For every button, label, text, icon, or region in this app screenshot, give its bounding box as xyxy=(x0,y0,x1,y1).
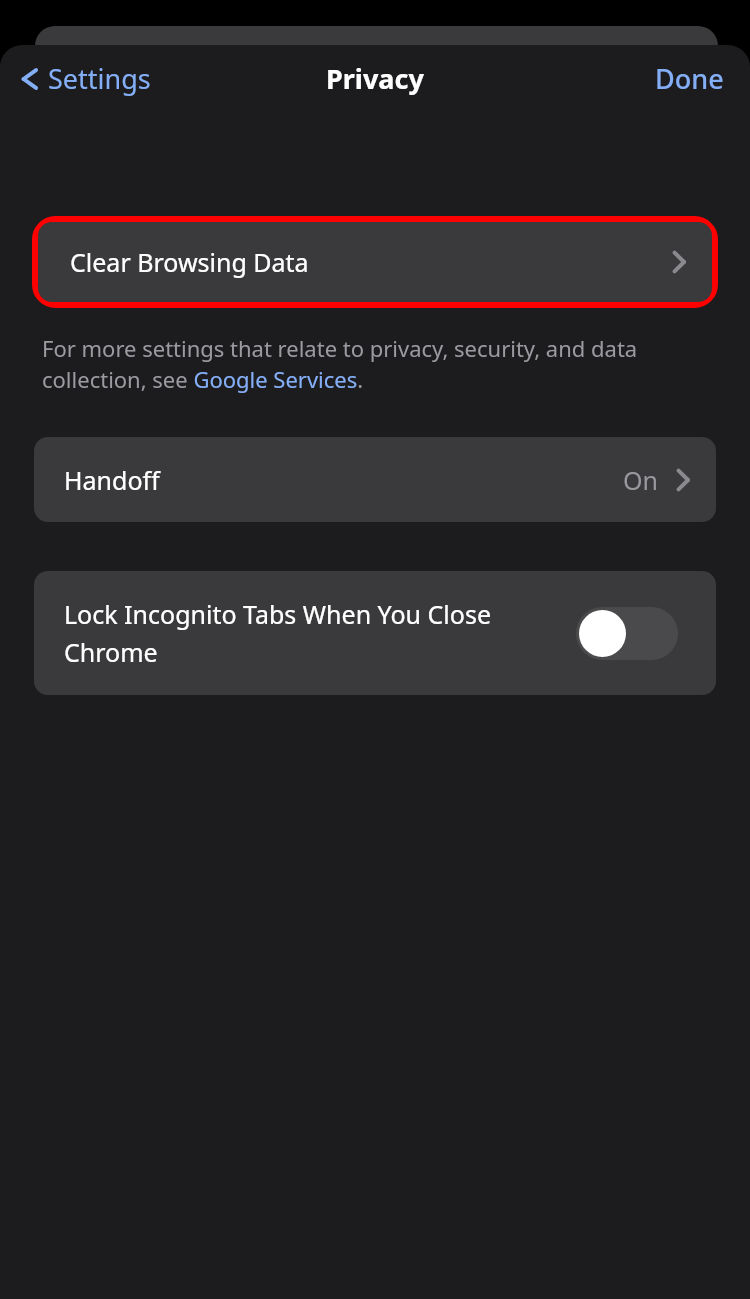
button[interactable]: Lock Incognito Tabs toggle xyxy=(576,607,678,660)
button[interactable]: Handoff xyxy=(34,437,716,522)
staticText: Done xyxy=(655,60,724,97)
staticText: Privacy xyxy=(326,60,424,97)
staticText: For more settings that relate to privacy… xyxy=(42,333,708,395)
staticText: Lock Incognito Tabs When You Close Chrom… xyxy=(64,597,560,669)
button[interactable]: Clear Browsing Data xyxy=(38,222,712,302)
staticText: Clear Browsing Data xyxy=(70,245,672,279)
staticText: On xyxy=(623,463,658,497)
button[interactable]: Settings xyxy=(14,54,157,103)
staticText: Settings xyxy=(48,60,151,97)
button[interactable]: Done xyxy=(649,52,730,105)
staticText: Handoff xyxy=(64,463,623,497)
